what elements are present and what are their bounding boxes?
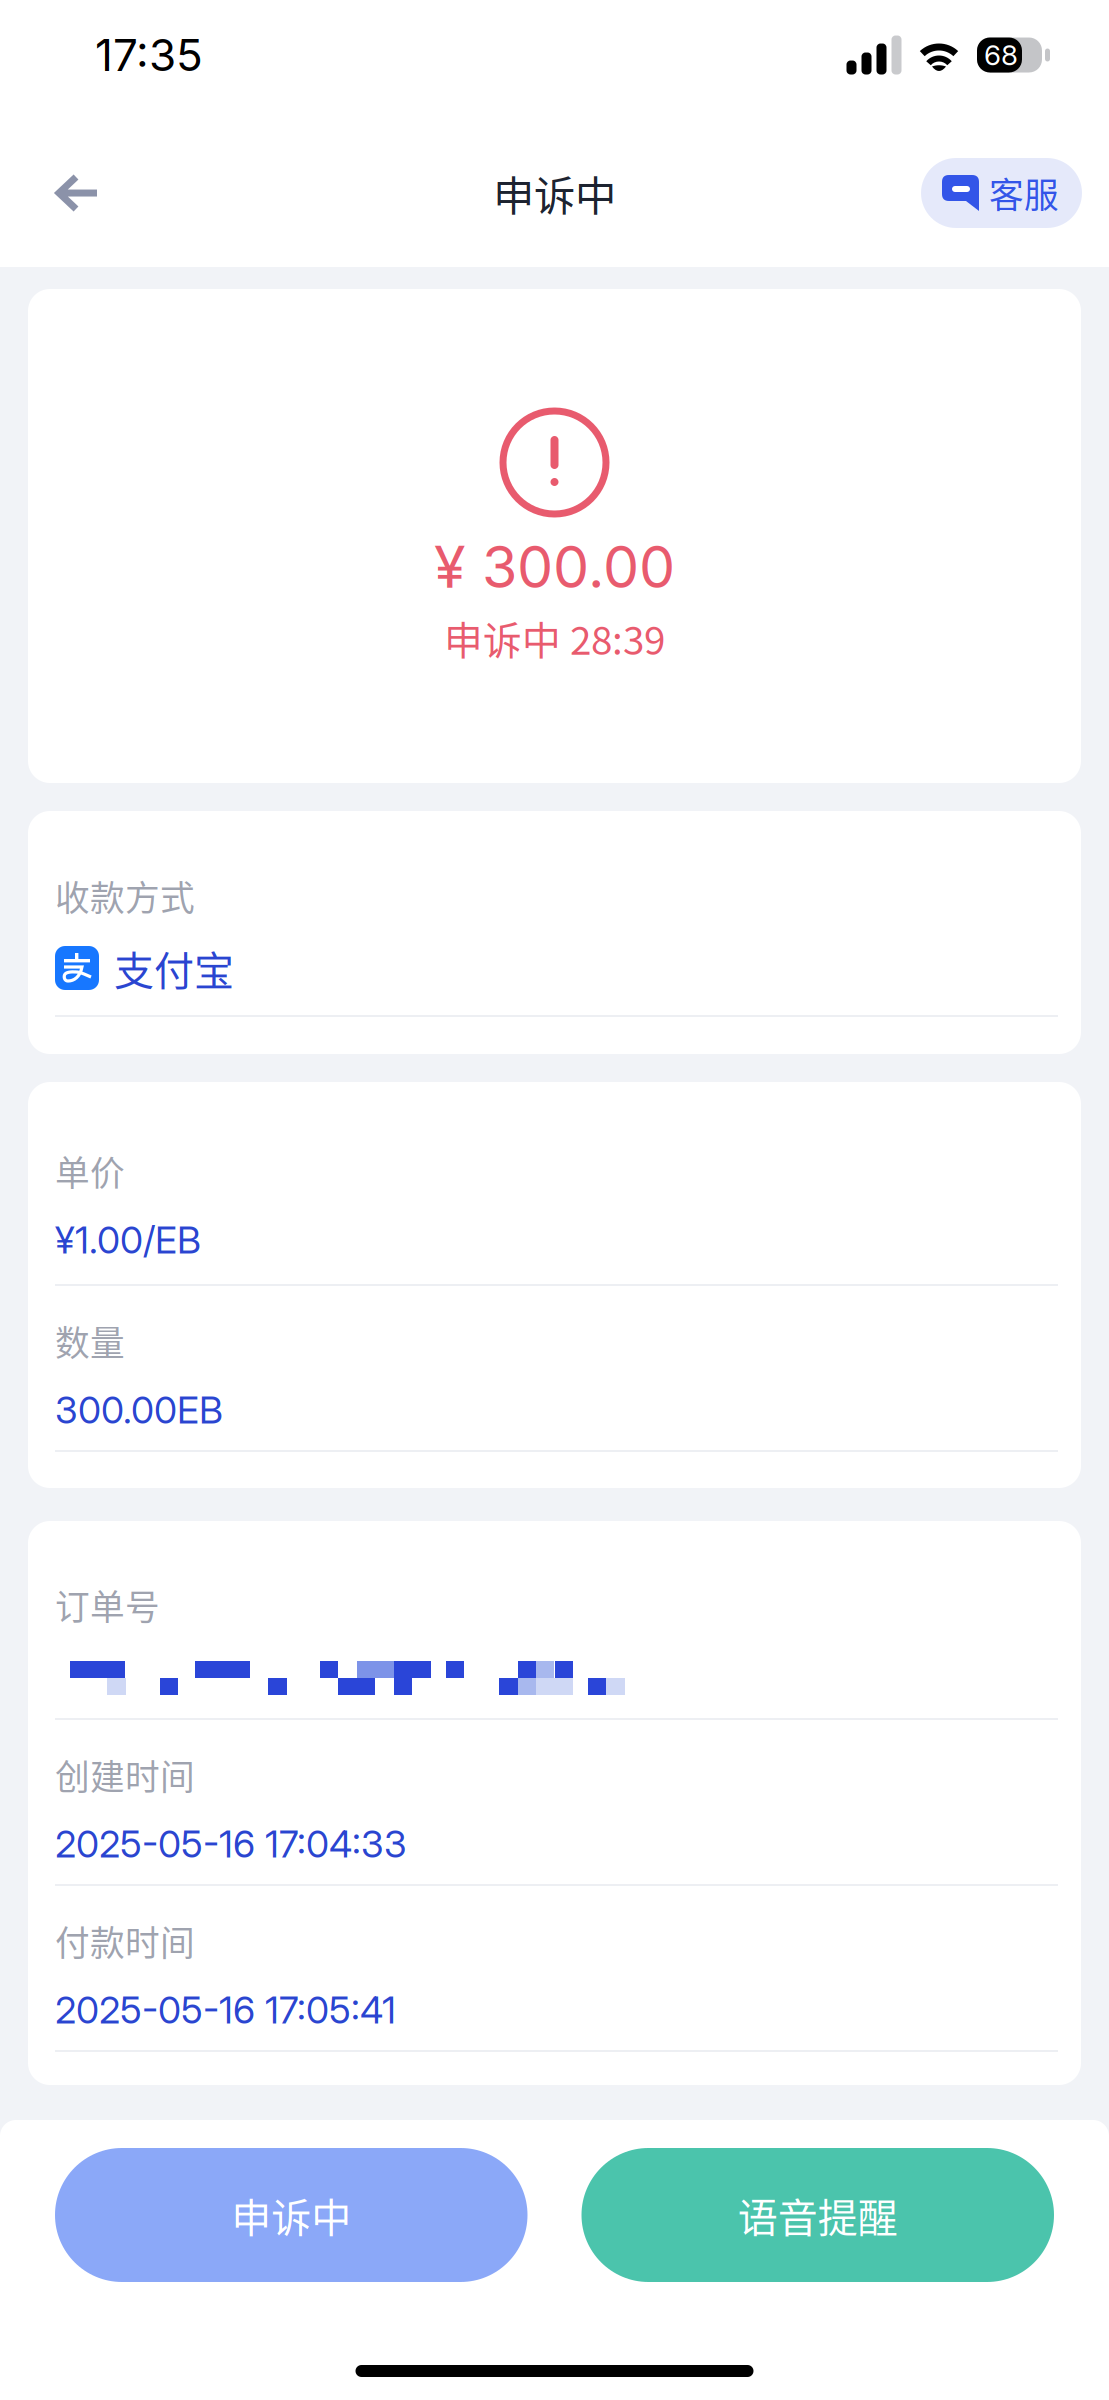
button[interactable]: 申诉中 [55,2148,527,2282]
staticText: 支付宝 [114,939,234,997]
staticText: 订单号 [55,1580,160,1630]
staticText: 语音提醒 [738,2186,898,2244]
staticText: 收款方式 [55,871,195,921]
staticText: ¥1.00/EB [55,1217,201,1263]
staticText: 数量 [55,1316,125,1366]
staticText: 客服 [989,168,1059,218]
staticText: 申诉中 [493,163,616,223]
staticText: 68 [984,38,1018,72]
staticText: 申诉中 28:39 [444,610,665,666]
staticText: 2025-05-16 17:05:41 [55,1987,396,2033]
staticText: ¥ 300.00 [434,532,675,602]
staticText: 单价 [55,1146,125,1196]
button[interactable]: 语音提醒 [581,2148,1054,2282]
button[interactable]: 客服 [921,158,1082,228]
staticText: 17:35 [95,28,203,82]
staticText: 申诉中 [231,2186,351,2244]
staticText: 2025-05-16 17:04:33 [55,1821,407,1867]
button[interactable]: Back [30,145,126,241]
staticText: 创建时间 [55,1750,195,1800]
staticText: 300.00EB [55,1387,223,1433]
staticText: 付款时间 [55,1916,195,1966]
